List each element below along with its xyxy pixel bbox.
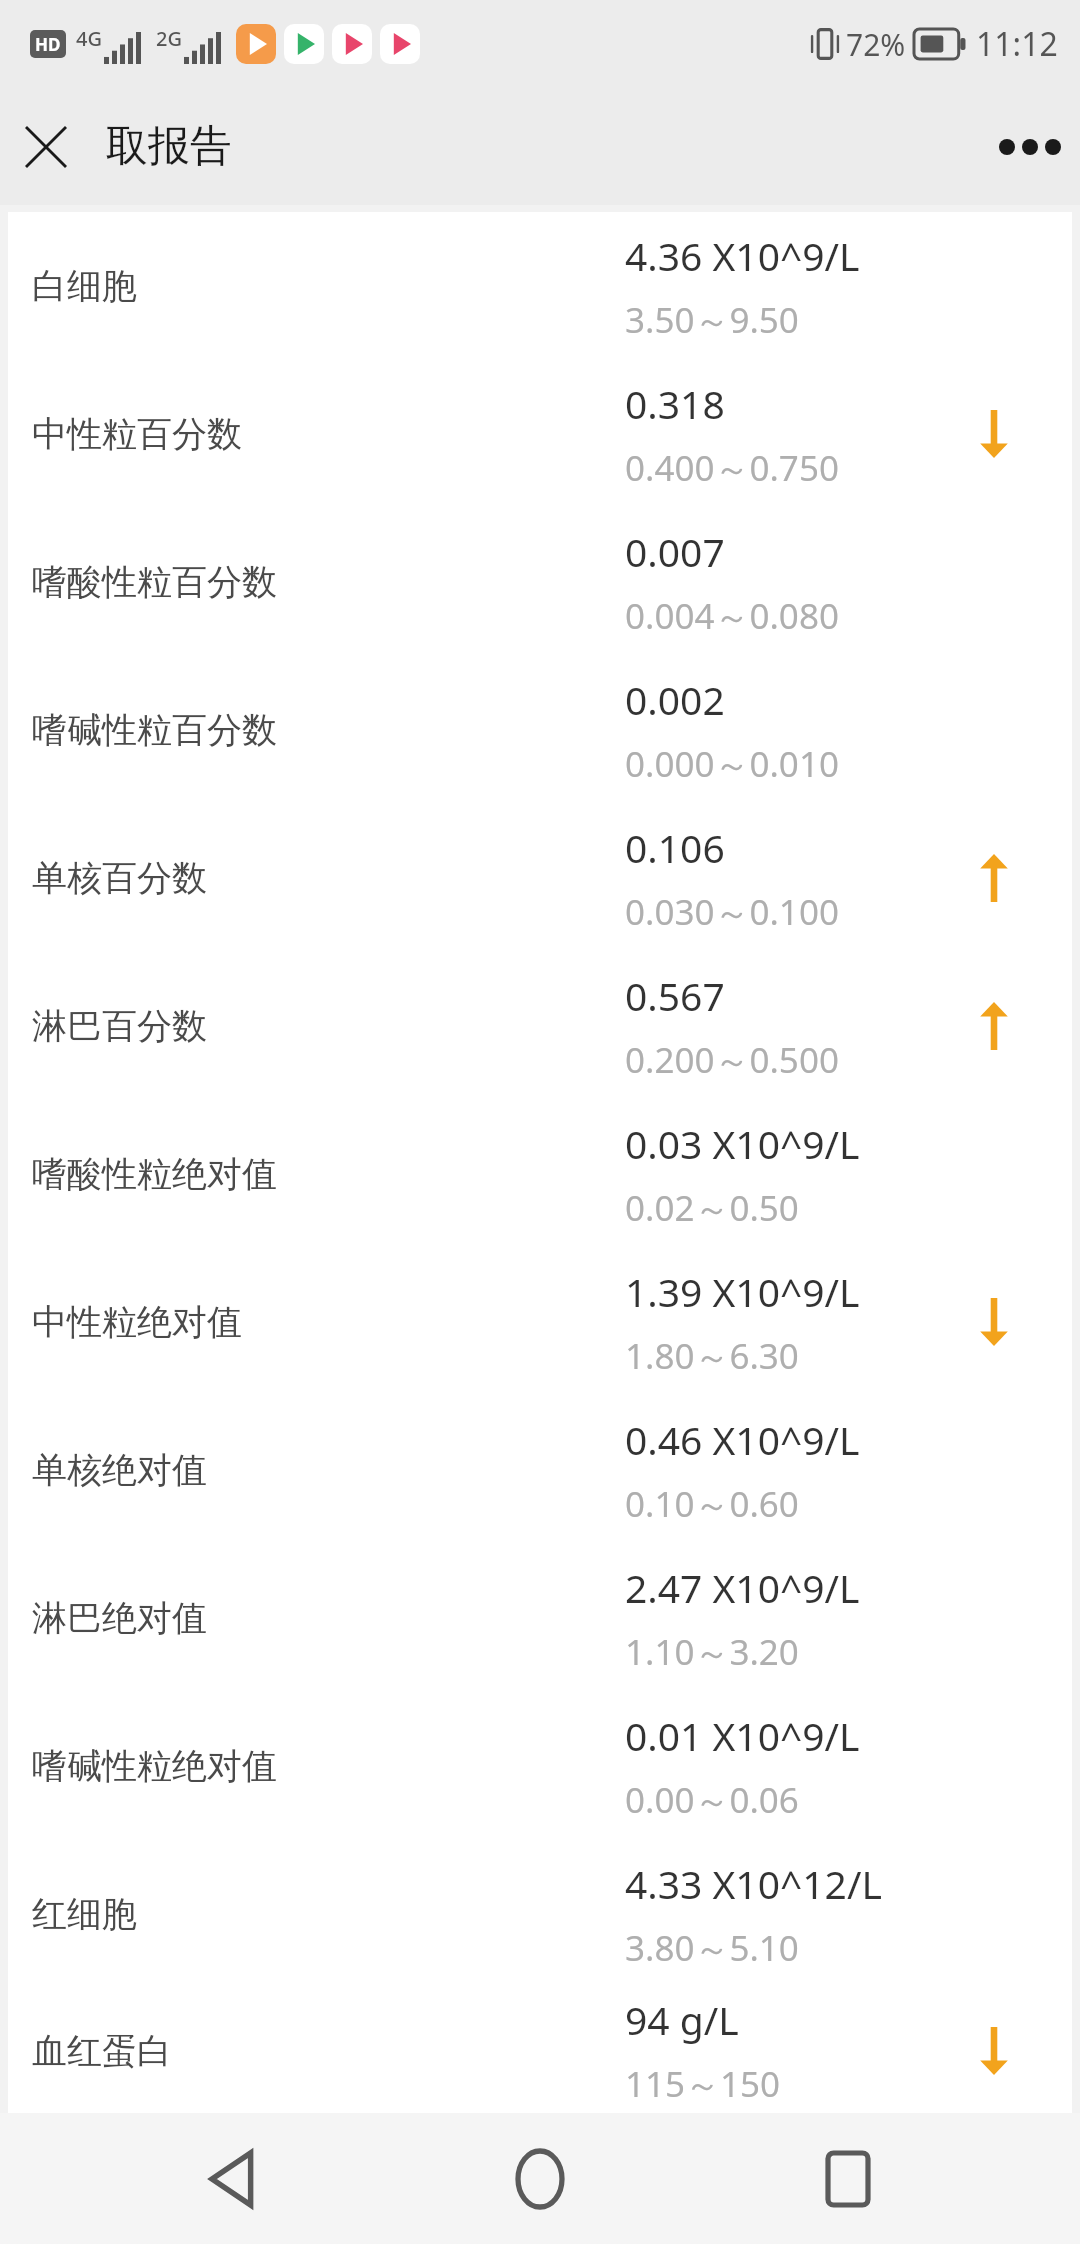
- staticText: 1.39 X10^9/L: [625, 1265, 860, 1318]
- button[interactable]: 最近任务: [773, 2113, 923, 2244]
- button[interactable]: 嗜碱性粒百分数: [8, 656, 1072, 804]
- staticText: 中性粒百分数: [32, 412, 242, 456]
- staticText: 3.50～9.50: [625, 296, 799, 344]
- button[interactable]: 白细胞: [8, 212, 1072, 360]
- other: 偏高: [966, 850, 1022, 906]
- staticText: 1.10～3.20: [625, 1628, 799, 1676]
- button[interactable]: 淋巴绝对值: [8, 1544, 1072, 1692]
- staticText: 0.007: [625, 525, 725, 578]
- button[interactable]: 红细胞: [8, 1840, 1072, 1988]
- staticText: 3.80～5.10: [625, 1924, 799, 1972]
- staticText: 嗜碱性粒百分数: [32, 708, 277, 752]
- staticText: 0.106: [625, 821, 725, 874]
- button[interactable]: 嗜酸性粒绝对值: [8, 1100, 1072, 1248]
- button[interactable]: 血红蛋白: [8, 1988, 1072, 2113]
- staticText: 4G: [76, 25, 102, 52]
- staticText: 血红蛋白: [32, 2029, 172, 2073]
- staticText: 4.33 X10^12/L: [625, 1857, 882, 1910]
- staticText: 2.47 X10^9/L: [625, 1561, 860, 1614]
- staticText: 1.80～6.30: [625, 1332, 799, 1380]
- staticText: 嗜酸性粒绝对值: [32, 1152, 277, 1196]
- button[interactable]: 单核绝对值: [8, 1396, 1072, 1544]
- staticText: 2G: [156, 25, 182, 52]
- staticText: 红细胞: [32, 1892, 137, 1936]
- staticText: 白细胞: [32, 264, 137, 308]
- staticText: 0.01 X10^9/L: [625, 1709, 860, 1762]
- button[interactable]: 更多: [990, 107, 1070, 187]
- button[interactable]: 关闭: [8, 109, 84, 185]
- staticText: 嗜碱性粒绝对值: [32, 1744, 277, 1788]
- staticText: 11:12: [976, 22, 1058, 66]
- staticText: 0.567: [625, 969, 725, 1022]
- button[interactable]: 嗜酸性粒百分数: [8, 508, 1072, 656]
- staticText: 0.318: [625, 377, 725, 430]
- staticText: 115～150: [625, 2060, 781, 2108]
- other: 偏低: [966, 2023, 1022, 2079]
- staticText: 嗜酸性粒百分数: [32, 560, 277, 604]
- staticText: 0.46 X10^9/L: [625, 1413, 860, 1466]
- staticText: 淋巴绝对值: [32, 1596, 207, 1640]
- staticText: 0.02～0.50: [625, 1184, 799, 1232]
- staticText: 0.00～0.06: [625, 1776, 799, 1824]
- staticText: HD: [35, 33, 61, 56]
- staticText: 单核绝对值: [32, 1448, 207, 1492]
- staticText: 72%: [846, 24, 906, 65]
- staticText: 0.000～0.010: [625, 740, 839, 788]
- staticText: 0.10～0.60: [625, 1480, 799, 1528]
- button[interactable]: 单核百分数: [8, 804, 1072, 952]
- button[interactable]: 中性粒百分数: [8, 360, 1072, 508]
- staticText: 中性粒绝对值: [32, 1300, 242, 1344]
- button[interactable]: 嗜碱性粒绝对值: [8, 1692, 1072, 1840]
- staticText: 0.004～0.080: [625, 592, 839, 640]
- staticText: 94 g/L: [625, 1993, 739, 2046]
- staticText: 0.400～0.750: [625, 444, 839, 492]
- staticText: 淋巴百分数: [32, 1004, 207, 1048]
- staticText: 取报告: [106, 120, 232, 173]
- button[interactable]: 返回: [158, 2113, 308, 2244]
- button[interactable]: 中性粒绝对值: [8, 1248, 1072, 1396]
- button[interactable]: 淋巴百分数: [8, 952, 1072, 1100]
- other: 偏高: [966, 998, 1022, 1054]
- staticText: 单核百分数: [32, 856, 207, 900]
- staticText: 0.002: [625, 673, 725, 726]
- staticText: 0.03 X10^9/L: [625, 1117, 860, 1170]
- staticText: 0.200～0.500: [625, 1036, 839, 1084]
- other: 偏低: [966, 1294, 1022, 1350]
- button[interactable]: 主屏幕: [465, 2113, 615, 2244]
- other: 偏低: [966, 406, 1022, 462]
- staticText: 4.36 X10^9/L: [625, 229, 860, 282]
- staticText: 0.030～0.100: [625, 888, 839, 936]
